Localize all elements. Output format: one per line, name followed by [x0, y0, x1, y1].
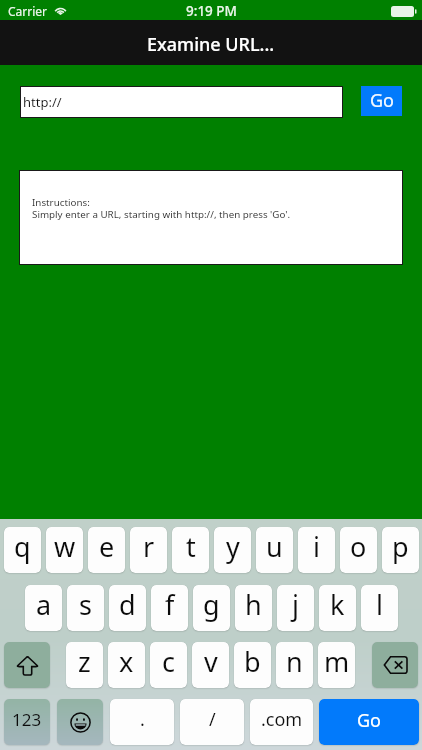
- staticText: d: [119, 586, 136, 623]
- button[interactable]: .com: [250, 699, 313, 745]
- staticText: i: [313, 528, 320, 565]
- staticText: http://: [23, 93, 62, 111]
- button[interactable]: Go: [361, 86, 402, 116]
- button[interactable]: g: [193, 585, 230, 631]
- staticText: e: [99, 528, 115, 565]
- staticText: m: [324, 643, 350, 680]
- button[interactable]: 123: [4, 699, 50, 745]
- staticText: s: [79, 586, 92, 623]
- staticText: h: [245, 586, 262, 623]
- button[interactable]: v: [192, 642, 229, 688]
- button[interactable]: b: [234, 642, 271, 688]
- button[interactable]: n: [276, 642, 313, 688]
- staticText: .com: [261, 707, 303, 732]
- button[interactable]: d: [109, 585, 146, 631]
- staticText: t: [186, 528, 196, 565]
- button[interactable]: f: [151, 585, 188, 631]
- staticText: u: [266, 528, 283, 565]
- button[interactable]: e: [88, 527, 125, 573]
- button[interactable]: Emoji: [57, 699, 103, 745]
- staticText: x: [119, 643, 134, 680]
- staticText: r: [143, 528, 155, 565]
- button[interactable]: c: [150, 642, 187, 688]
- button[interactable]: s: [67, 585, 104, 631]
- staticText: q: [14, 528, 31, 565]
- staticText: n: [286, 643, 303, 680]
- button[interactable]: k: [319, 585, 356, 631]
- staticText: l: [376, 586, 383, 623]
- staticText: /: [209, 707, 216, 732]
- button[interactable]: a: [25, 585, 62, 631]
- button[interactable]: w: [46, 527, 83, 573]
- button[interactable]: o: [340, 527, 377, 573]
- staticText: Go: [370, 88, 394, 113]
- staticText: Carrier: [8, 3, 48, 19]
- staticText: y: [226, 528, 240, 565]
- staticText: Instructions: Simply enter a URL, starti…: [32, 196, 291, 221]
- button[interactable]: z: [66, 642, 103, 688]
- staticText: w: [54, 528, 76, 565]
- staticText: Go: [357, 708, 381, 733]
- button[interactable]: x: [108, 642, 145, 688]
- staticText: b: [244, 643, 261, 680]
- button[interactable]: Shift: [4, 642, 50, 688]
- button[interactable]: Backspace: [372, 642, 418, 688]
- staticText: f: [165, 586, 175, 623]
- button[interactable]: r: [130, 527, 167, 573]
- button[interactable]: m: [318, 642, 355, 688]
- staticText: c: [162, 643, 175, 680]
- staticText: 123: [12, 708, 42, 731]
- button[interactable]: /: [180, 699, 244, 745]
- staticText: v: [204, 643, 218, 680]
- button[interactable]: Go: [319, 699, 419, 745]
- button[interactable]: .: [110, 699, 174, 745]
- button[interactable]: i: [298, 527, 335, 573]
- staticText: .: [140, 707, 145, 732]
- button[interactable]: j: [277, 585, 314, 631]
- staticText: z: [78, 643, 91, 680]
- button[interactable]: http://: [20, 86, 343, 118]
- staticText: a: [36, 586, 52, 623]
- button[interactable]: y: [214, 527, 251, 573]
- button[interactable]: h: [235, 585, 272, 631]
- button[interactable]: u: [256, 527, 293, 573]
- staticText: 9:19 PM: [186, 2, 237, 20]
- staticText: g: [203, 586, 220, 623]
- staticText: p: [392, 528, 409, 565]
- button[interactable]: p: [382, 527, 419, 573]
- button[interactable]: l: [361, 585, 398, 631]
- staticText: Examine URL...: [147, 32, 275, 57]
- staticText: k: [330, 586, 345, 623]
- staticText: o: [350, 528, 367, 565]
- button[interactable]: t: [172, 527, 209, 573]
- button[interactable]: q: [4, 527, 41, 573]
- staticText: j: [292, 586, 299, 623]
